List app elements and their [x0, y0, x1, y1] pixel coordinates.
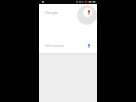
button[interactable]: Stop voice input: [88, 10, 90, 15]
other: Status bar: [39, 0, 97, 4]
staticText: Google: [45, 10, 58, 15]
button[interactable]: Change language: [88, 44, 90, 48]
staticText: Parler maintenant: [45, 44, 64, 48]
